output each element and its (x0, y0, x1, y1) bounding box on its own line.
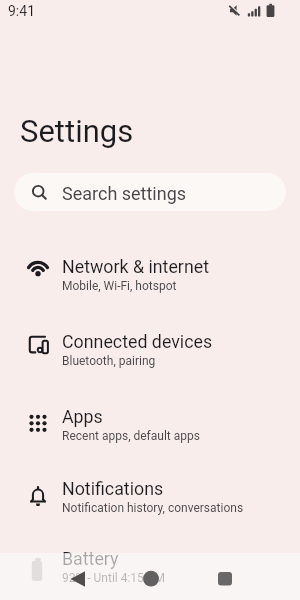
staticText: 92% - Until 4:15 PM (62, 571, 165, 585)
button[interactable] (207, 561, 243, 597)
button[interactable] (58, 561, 94, 597)
button[interactable]: Apps (0, 388, 300, 462)
staticText: Apps (62, 406, 103, 427)
button[interactable]: Search settings (14, 173, 286, 211)
staticText: Connected devices (62, 331, 213, 352)
button[interactable]: Network & internet (0, 238, 300, 312)
button[interactable]: Notifications (0, 460, 300, 534)
button[interactable] (133, 561, 169, 597)
staticText: Settings (20, 113, 134, 149)
staticText: Recent apps, default apps (62, 429, 200, 443)
staticText: Network & internet (62, 256, 209, 277)
staticText: Mobile, Wi-Fi, hotspot (62, 279, 177, 293)
staticText: Notification history, conversations (62, 501, 244, 515)
staticText: Bluetooth, pairing (62, 354, 156, 368)
staticText: Search settings (62, 183, 187, 204)
button[interactable]: Battery (0, 530, 300, 600)
staticText: Battery (62, 548, 119, 569)
staticText: 9:41 (8, 3, 35, 19)
button[interactable]: Connected devices (0, 313, 300, 387)
staticText: Notifications (62, 478, 164, 499)
